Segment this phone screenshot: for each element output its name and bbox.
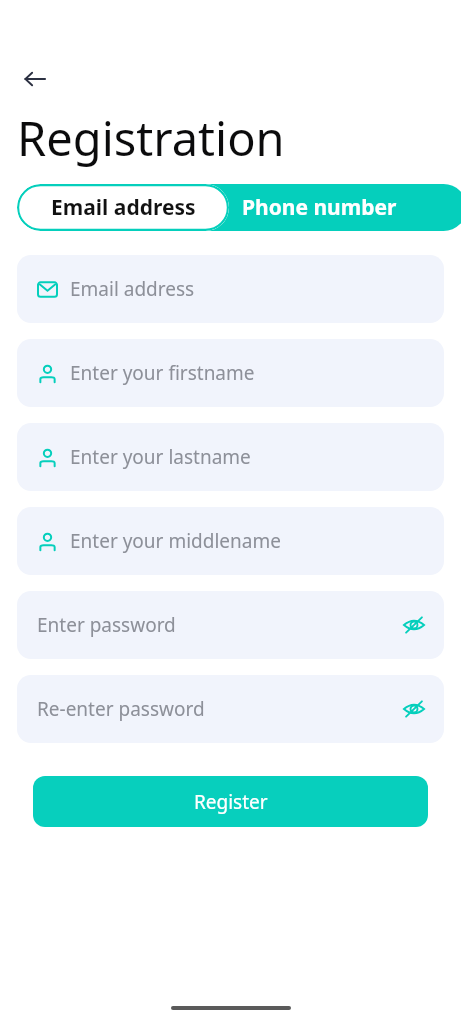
button[interactable]: Re-enter password [17,675,444,743]
button[interactable]: Show password [392,687,436,731]
staticText: Enter your middlename [70,528,428,554]
staticText: Registration [17,106,285,170]
button[interactable]: Enter your firstname [17,339,444,407]
button[interactable]: Email address [17,184,229,231]
button[interactable]: Enter your middlename [17,507,444,575]
staticText: Enter password [37,612,392,638]
staticText: Enter your lastname [70,444,428,470]
button[interactable]: Enter password [17,591,444,659]
staticText: Email address [51,193,196,222]
staticText: Enter your firstname [70,360,428,386]
button[interactable]: Register [33,776,428,827]
button[interactable]: Enter your lastname [17,423,444,491]
button[interactable]: Phone number [229,184,461,231]
button[interactable]: Show password [392,603,436,647]
staticText: Re-enter password [37,696,392,722]
staticText: Email address [70,276,428,302]
staticText: Phone number [242,193,397,222]
button[interactable]: Email address [17,255,444,323]
button[interactable]: Back [14,58,56,100]
staticText: Register [194,789,268,815]
